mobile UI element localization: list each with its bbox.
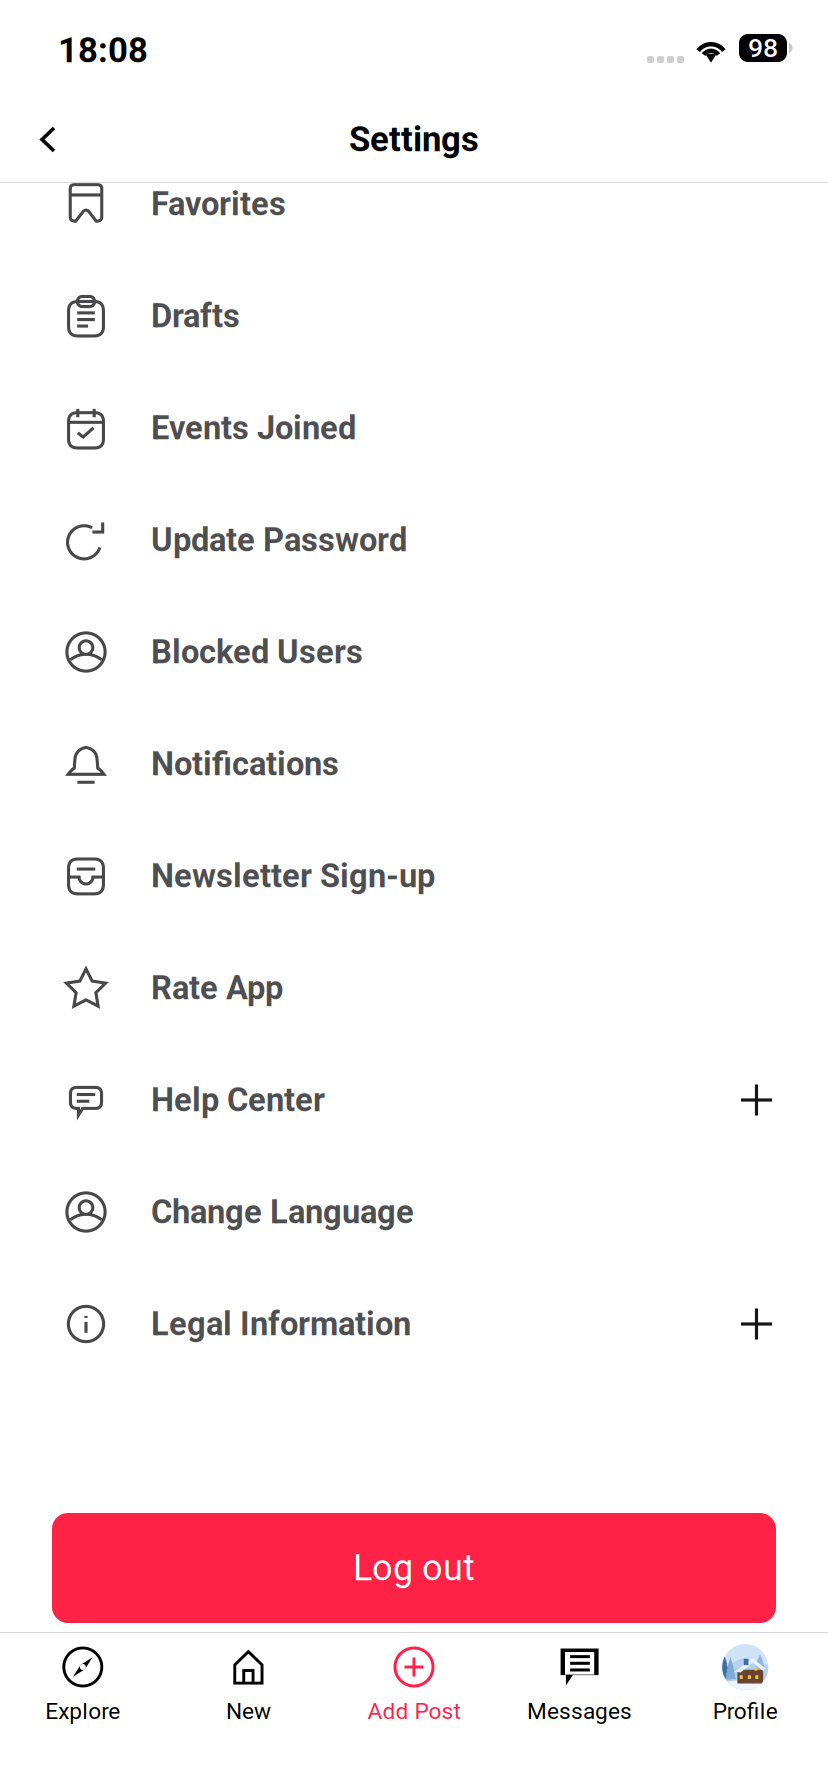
button[interactable]: Change Language xyxy=(0,1156,828,1268)
button[interactable]: Explore xyxy=(0,1632,166,1792)
staticText: Settings xyxy=(349,119,479,160)
button[interactable]: Legal Information xyxy=(0,1268,828,1380)
staticText: Newsletter Sign-up xyxy=(151,857,435,895)
button[interactable]: Blocked Users xyxy=(0,596,828,708)
button[interactable]: Log out xyxy=(52,1513,776,1623)
button[interactable]: Update Password xyxy=(0,484,828,596)
staticText: Change Language xyxy=(151,1193,414,1231)
button[interactable]: Messages xyxy=(497,1632,662,1792)
button[interactable]: Newsletter Sign-up xyxy=(0,820,828,932)
staticText: Legal Information xyxy=(151,1305,411,1343)
staticText: 98 xyxy=(748,32,778,64)
staticText: Messages xyxy=(527,1698,632,1725)
staticText: Rate App xyxy=(151,969,283,1007)
button[interactable]: Notifications xyxy=(0,708,828,820)
staticText: Add Post xyxy=(367,1698,460,1725)
button[interactable]: Rate App xyxy=(0,932,828,1044)
staticText: Explore xyxy=(45,1698,120,1725)
button[interactable]: Favorites xyxy=(0,148,828,260)
button[interactable]: Back xyxy=(0,102,96,177)
staticText: Log out xyxy=(353,1547,475,1589)
staticText: Favorites xyxy=(151,185,286,223)
staticText: Drafts xyxy=(151,297,240,335)
button[interactable]: Events Joined xyxy=(0,372,828,484)
button[interactable]: Drafts xyxy=(0,260,828,372)
staticText: Help Center xyxy=(151,1081,325,1119)
button[interactable]: New xyxy=(166,1632,331,1792)
staticText: Events Joined xyxy=(151,409,356,447)
staticText: New xyxy=(226,1698,271,1725)
staticText: Profile xyxy=(713,1698,778,1725)
staticText: Notifications xyxy=(151,745,339,783)
staticText: 18:08 xyxy=(58,30,148,71)
button[interactable]: Profile xyxy=(662,1632,828,1792)
staticText: Blocked Users xyxy=(151,633,363,671)
button[interactable]: Add Post xyxy=(331,1632,497,1792)
button[interactable]: Help Center xyxy=(0,1044,828,1156)
staticText: Update Password xyxy=(151,521,407,559)
